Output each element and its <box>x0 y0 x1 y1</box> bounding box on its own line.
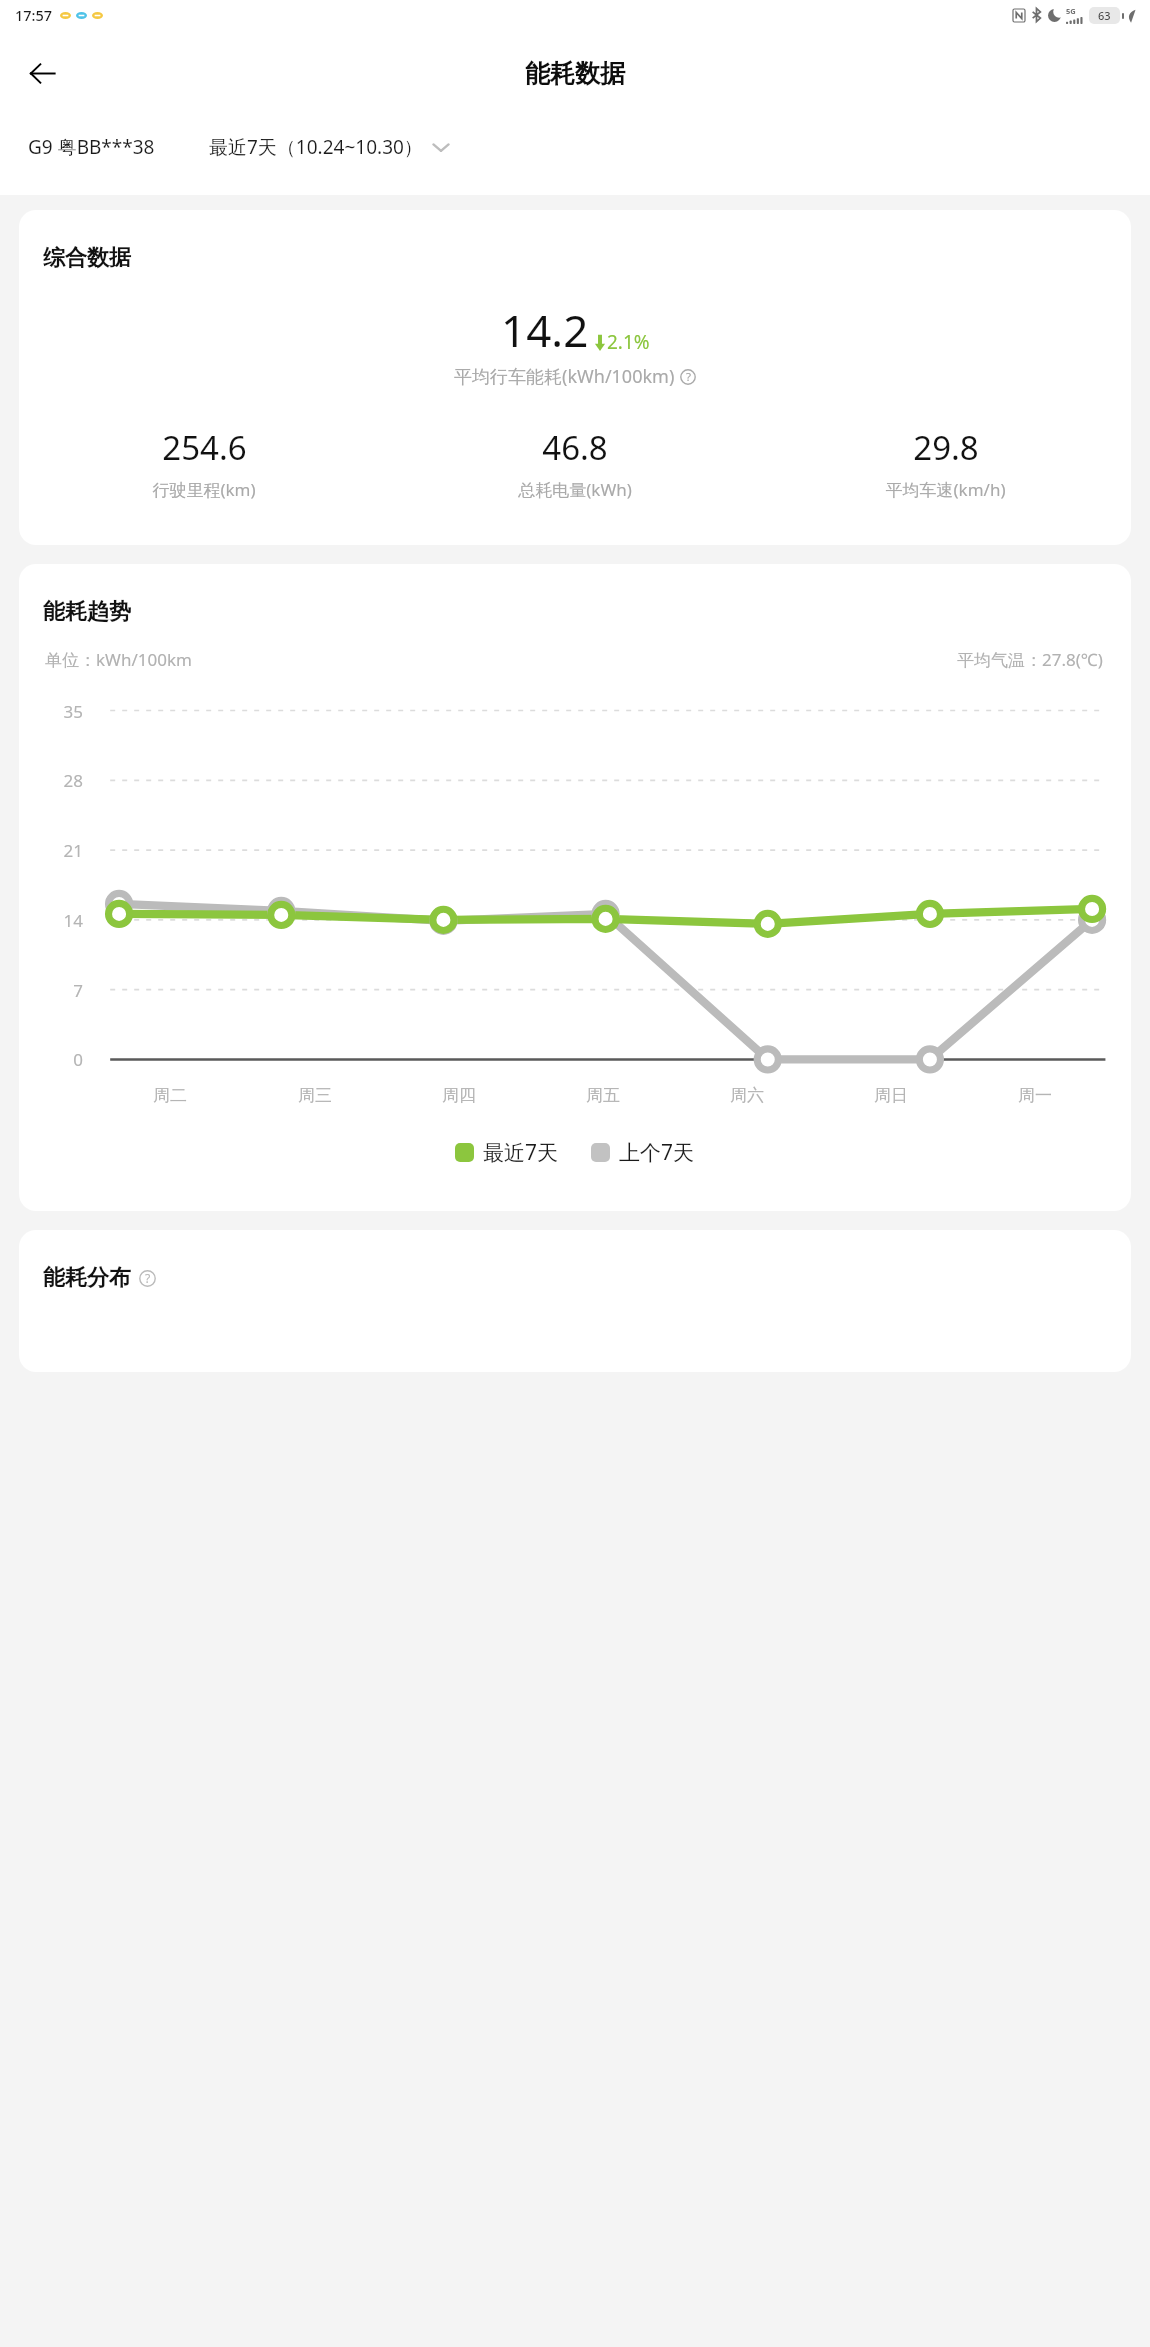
staticText: 平均行车能耗(kWh/100km) <box>454 364 675 389</box>
staticText: 周三 <box>298 1085 332 1106</box>
staticText: 0 <box>43 1048 83 1071</box>
button[interactable]: 综合数据 <box>19 210 1131 545</box>
button[interactable]: 29.8 <box>760 425 1131 501</box>
staticText: 上个7天 <box>619 1138 695 1167</box>
staticText: 21 <box>43 839 83 862</box>
staticText: 周一 <box>1018 1085 1052 1106</box>
staticText: 2.1% <box>607 329 650 355</box>
staticText: 综合数据 <box>43 244 131 272</box>
staticText: 29.8 <box>913 425 979 470</box>
staticText: 63 <box>1098 8 1111 23</box>
staticText: 能耗分布 <box>43 1264 131 1292</box>
staticText: 14 <box>43 909 83 932</box>
staticText: 单位：kWh/100km <box>45 648 192 671</box>
button[interactable]: G9 粤BB***38 <box>28 134 155 160</box>
staticText: 254.6 <box>162 425 247 470</box>
staticText: 5G <box>1066 6 1076 16</box>
button[interactable]: 46.8 <box>389 425 760 501</box>
staticText: 平均气温：27.8(℃) <box>957 648 1103 671</box>
staticText: 周四 <box>442 1085 476 1106</box>
staticText: 7 <box>43 979 83 1002</box>
button[interactable]: Back <box>14 45 70 101</box>
staticText: 28 <box>43 769 83 792</box>
button[interactable]: 能耗分布 <box>19 1230 1131 1372</box>
staticText: ? <box>145 1270 151 1287</box>
button[interactable]: 254.6 <box>19 425 389 501</box>
staticText: 周二 <box>153 1085 187 1106</box>
staticText: 周日 <box>874 1085 908 1106</box>
button[interactable]: 能耗趋势 <box>19 564 1131 1211</box>
staticText: 最近7天（10.24~10.30） <box>209 134 423 160</box>
staticText: 14.2 <box>501 300 589 360</box>
button[interactable]: 最近7天 <box>455 1138 559 1167</box>
staticText: 最近7天 <box>483 1138 559 1167</box>
staticText: G9 粤BB***38 <box>28 134 155 160</box>
staticText: 周五 <box>586 1085 620 1106</box>
staticText: 平均车速(km/h) <box>885 478 1006 501</box>
staticText: 周六 <box>730 1085 764 1106</box>
staticText: 总耗电量(kWh) <box>518 478 632 501</box>
staticText: 17:57 <box>15 5 53 25</box>
staticText: 35 <box>43 700 83 723</box>
button[interactable]: 上个7天 <box>591 1138 695 1167</box>
staticText: ? <box>686 369 691 385</box>
staticText: 能耗趋势 <box>43 598 131 626</box>
button[interactable]: 最近7天（10.24~10.30） <box>209 134 450 160</box>
staticText: 46.8 <box>542 425 608 470</box>
staticText: 行驶里程(km) <box>152 478 256 501</box>
staticText: 能耗数据 <box>525 58 625 89</box>
